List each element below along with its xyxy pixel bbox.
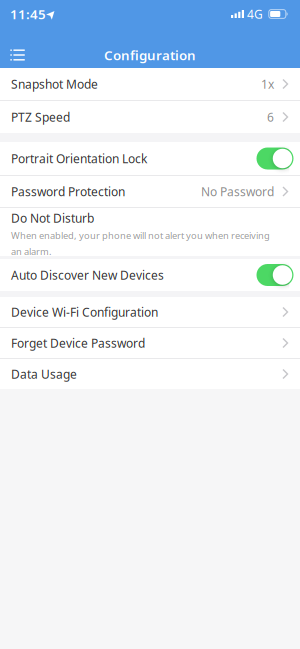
staticText: 11:45 (10, 5, 46, 23)
staticText: Auto Discover New Devices (11, 267, 164, 283)
staticText: Snapshot Mode (11, 76, 98, 92)
button[interactable]: Portrait Orientation Lock (0, 142, 300, 175)
staticText: Do Not Disturb (11, 210, 94, 226)
staticText: PTZ Speed (11, 109, 70, 125)
staticText: an alarm. (11, 245, 52, 258)
button[interactable]: Do Not Disturb (0, 208, 300, 256)
staticText: Data Usage (11, 366, 77, 382)
button[interactable]: Password Protection (0, 176, 300, 207)
staticText: Forget Device Password (11, 335, 145, 351)
button[interactable] (6, 45, 29, 65)
staticText: When enabled, your phone will not alert … (11, 229, 270, 242)
button[interactable]: Snapshot Mode (0, 68, 300, 100)
staticText: No Password (201, 183, 274, 199)
staticText: Password Protection (11, 183, 125, 199)
button[interactable]: Forget Device Password (0, 328, 300, 358)
button[interactable]: Auto Discover New Devices (0, 259, 300, 291)
staticText: 4G (247, 6, 263, 22)
staticText: Portrait Orientation Lock (11, 150, 147, 166)
staticText: 6 (267, 109, 274, 125)
button[interactable]: Data Usage (0, 359, 300, 389)
staticText: Device Wi-Fi Configuration (11, 304, 158, 320)
staticText: Configuration (104, 46, 196, 64)
button[interactable]: PTZ Speed (0, 101, 300, 133)
staticText: 1x (261, 76, 274, 92)
button[interactable]: Device Wi-Fi Configuration (0, 297, 300, 327)
